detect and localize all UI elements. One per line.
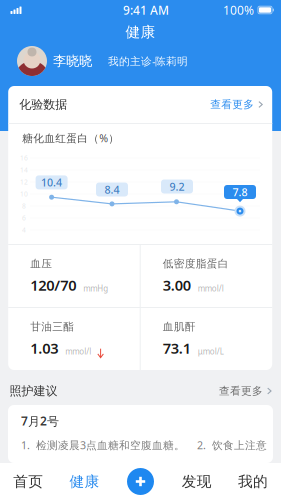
staticText: 查看更多: [219, 384, 263, 397]
staticText: 血肌酐: [163, 320, 196, 333]
staticText: 健康: [69, 472, 99, 490]
staticText: 甘油三酯: [30, 320, 74, 333]
staticText: mmol/l: [65, 346, 91, 357]
staticText: 6: [22, 214, 26, 222]
button[interactable]: 查看更多: [198, 90, 263, 119]
staticText: 73.1: [163, 338, 191, 358]
staticText: 发现: [182, 472, 212, 490]
staticText: 100%: [223, 2, 254, 18]
staticText: 照护建议: [9, 384, 57, 398]
button[interactable]: 健康: [56, 463, 112, 500]
staticText: 李晓晓: [53, 53, 92, 69]
staticText: 10.4: [41, 175, 62, 189]
staticText: 120/70: [30, 275, 76, 295]
staticText: μmol/L: [198, 346, 224, 357]
staticText: 我的: [238, 472, 268, 490]
button[interactable]: 我的: [225, 463, 281, 500]
button[interactable]: 首页: [0, 463, 56, 500]
button[interactable]: 查看更多: [207, 376, 272, 405]
button[interactable]: Add: [117, 463, 163, 500]
staticText: 12: [20, 178, 28, 186]
staticText: 8.4: [104, 182, 119, 197]
staticText: 低密度脂蛋白: [163, 257, 229, 270]
staticText: 7.8: [232, 185, 247, 199]
button[interactable]: 发现: [168, 463, 225, 500]
staticText: 10: [20, 190, 28, 198]
staticText: 查看更多: [210, 98, 254, 111]
staticText: 9.2: [169, 179, 184, 194]
staticText: 14: [20, 166, 28, 174]
staticText: 血压: [30, 257, 52, 270]
staticText: 1. 检测凌晨3点血糖和空腹血糖。 2. 饮食上注意: [21, 438, 267, 452]
staticText: 8: [22, 202, 26, 210]
staticText: 健康: [125, 23, 155, 41]
staticText: 9:41 AM: [123, 2, 169, 18]
staticText: 16: [20, 154, 28, 162]
staticText: 7月2号: [21, 413, 59, 429]
staticText: 1.03: [30, 338, 58, 358]
staticText: mmHg: [83, 283, 108, 294]
staticText: 4: [22, 226, 26, 234]
staticText: 化验数据: [19, 97, 67, 112]
staticText: 3.00: [163, 275, 191, 295]
staticText: 首页: [13, 472, 43, 490]
staticText: mmol/l: [198, 283, 224, 294]
staticText: 我的主诊-陈莉明: [108, 54, 188, 68]
button[interactable]: 李晓晓: [0, 44, 281, 78]
staticText: 糖化血红蛋白（%）: [22, 131, 119, 145]
